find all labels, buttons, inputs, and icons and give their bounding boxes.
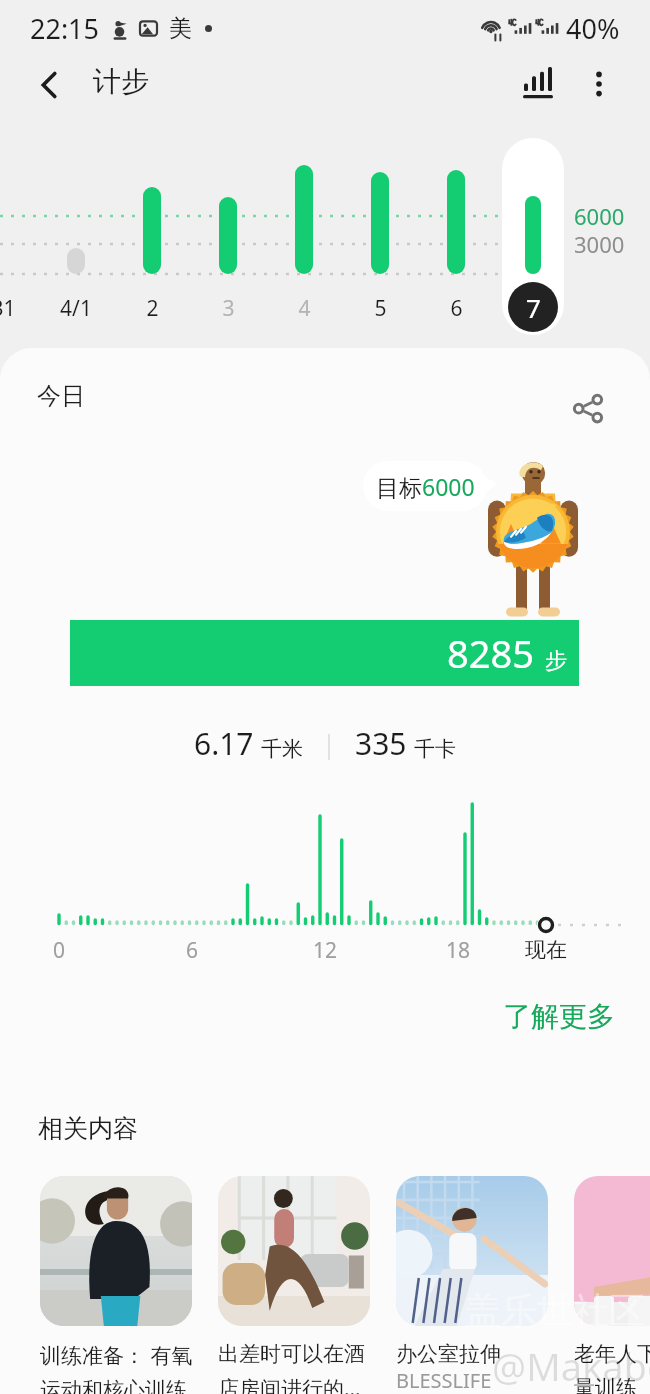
staticText: 0 — [53, 936, 66, 965]
staticText: 相关内容 — [38, 1113, 138, 1144]
button[interactable]: History chart — [510, 56, 566, 112]
staticText: 了解更多 — [503, 999, 615, 1034]
button[interactable]: 出差时可以在酒店房间进行的… — [218, 1176, 370, 1394]
staticText: BLESSLIFE — [396, 1367, 492, 1394]
staticText: 6 — [450, 294, 463, 323]
staticText: 计步 — [93, 64, 149, 99]
staticText: 步 — [545, 647, 567, 675]
button[interactable]: 老年人下肢力量训练 — [574, 1176, 650, 1394]
button[interactable]: Back — [21, 56, 79, 114]
staticText: 千卡 — [414, 736, 456, 762]
staticText: 335 — [355, 723, 407, 764]
staticText: 40% — [566, 10, 620, 47]
button[interactable]: Share — [560, 380, 616, 436]
button[interactable]: 7 — [502, 138, 564, 335]
button[interactable]: 办公室拉伸 — [396, 1176, 548, 1394]
staticText: 6.17 — [194, 723, 254, 764]
staticText: 3000 — [574, 229, 625, 259]
staticText: 6000 — [574, 201, 625, 231]
staticText: 22:15 — [30, 10, 100, 47]
button[interactable]: 了解更多 — [495, 993, 623, 1040]
staticText: 6 — [186, 936, 199, 965]
staticText: 4 — [298, 294, 311, 323]
staticText: 盖乐世社区 — [465, 1288, 645, 1333]
staticText: 7 — [526, 290, 541, 325]
staticText: 8285 — [447, 627, 534, 679]
staticText: 12 — [313, 936, 338, 965]
staticText: 办公室拉伸 — [396, 1341, 501, 1367]
staticText: 美 — [169, 14, 192, 43]
staticText: 18 — [446, 936, 471, 965]
button[interactable]: 训练准备： 有氧运动和核心训练 — [40, 1176, 210, 1394]
staticText: 3 — [222, 294, 235, 323]
staticText: 现在 — [525, 937, 567, 963]
staticText: 目标6000 — [376, 471, 475, 502]
button[interactable]: 8285 — [70, 620, 579, 686]
staticText: 出差时可以在酒店房间进行的… — [218, 1341, 370, 1394]
staticText: @Makabex — [492, 1340, 650, 1392]
staticText: 千米 — [261, 736, 303, 762]
button[interactable]: More options — [571, 56, 627, 112]
staticText: 31 — [0, 294, 16, 323]
staticText: 5 — [374, 294, 387, 323]
staticText: 老年人下肢力量训练 — [574, 1341, 650, 1394]
staticText: 2 — [146, 294, 159, 323]
staticText: 4/1 — [60, 294, 92, 323]
staticText: 训练准备： 有氧运动和核心训练 — [40, 1341, 210, 1394]
staticText: 今日 — [37, 381, 85, 411]
